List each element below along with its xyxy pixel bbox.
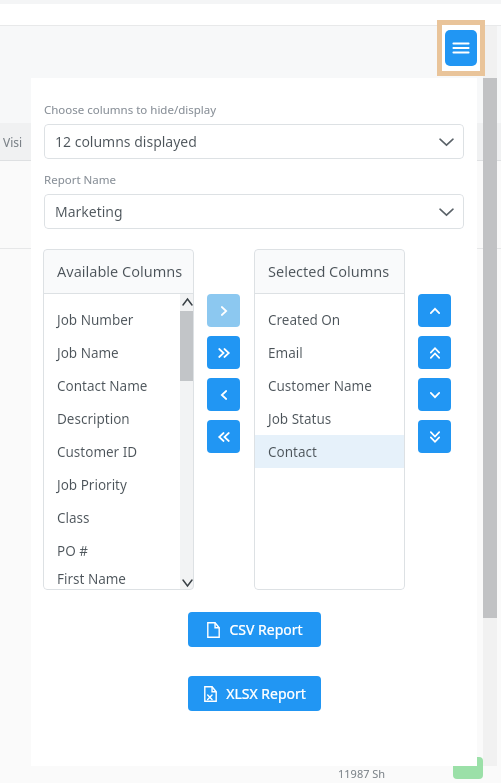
button[interactable]: Email bbox=[254, 336, 405, 369]
button[interactable]: Marketing bbox=[44, 194, 464, 229]
button[interactable]: First Name bbox=[43, 567, 194, 590]
button[interactable]: Job Priority bbox=[43, 468, 194, 501]
staticText: Description bbox=[57, 410, 130, 428]
button[interactable]: XLSX Report bbox=[188, 676, 321, 711]
staticText: Job Number bbox=[57, 311, 134, 329]
staticText: Customer ID bbox=[57, 443, 138, 461]
button[interactable]: Job Status bbox=[254, 402, 405, 435]
button[interactable]: Move to bottom bbox=[418, 420, 451, 453]
staticText: Email bbox=[268, 344, 303, 362]
staticText: Marketing bbox=[55, 202, 440, 221]
button[interactable]: Move right bbox=[207, 294, 240, 327]
staticText: XLSX Report bbox=[226, 684, 306, 703]
button[interactable]: Job Number bbox=[43, 303, 194, 336]
staticText: Available Columns bbox=[57, 261, 183, 281]
staticText: Job Priority bbox=[57, 476, 127, 494]
staticText: Contact bbox=[268, 443, 317, 461]
button[interactable]: Move up bbox=[418, 294, 451, 327]
button[interactable]: Move all right bbox=[207, 336, 240, 369]
button[interactable]: Job Name bbox=[43, 336, 194, 369]
staticText: 11987 Sh bbox=[338, 766, 386, 781]
button[interactable]: Contact Name bbox=[43, 369, 194, 402]
staticText: 12 columns displayed bbox=[55, 132, 440, 151]
button[interactable]: Scroll up bbox=[180, 294, 194, 309]
staticText: Report Name bbox=[44, 172, 116, 188]
staticText: First Name bbox=[57, 570, 126, 588]
button[interactable]: Move down bbox=[418, 378, 451, 411]
button[interactable]: Customer Name bbox=[254, 369, 405, 402]
button[interactable]: Contact bbox=[254, 435, 405, 468]
button[interactable]: PO # bbox=[43, 534, 194, 567]
staticText: Job Status bbox=[268, 410, 332, 428]
button[interactable]: Customer ID bbox=[43, 435, 194, 468]
staticText: Visi bbox=[3, 134, 23, 150]
staticText: Customer Name bbox=[268, 377, 372, 395]
staticText: Contact Name bbox=[57, 377, 148, 395]
button[interactable]: Description bbox=[43, 402, 194, 435]
button[interactable]: Scroll down bbox=[180, 575, 194, 590]
button[interactable]: Move all left bbox=[207, 420, 240, 453]
staticText: Created On bbox=[268, 311, 341, 329]
button[interactable]: 12 columns displayed bbox=[44, 124, 464, 159]
staticText: CSV Report bbox=[229, 620, 303, 639]
staticText: Job Name bbox=[57, 344, 119, 362]
staticText: Choose columns to hide/display bbox=[44, 102, 217, 118]
staticText: PO # bbox=[57, 542, 88, 560]
button[interactable]: Class bbox=[43, 501, 194, 534]
button[interactable]: Move left bbox=[207, 378, 240, 411]
staticText: Class bbox=[57, 509, 90, 527]
button[interactable]: Move to top bbox=[418, 336, 451, 369]
button[interactable]: Menu bbox=[445, 28, 477, 68]
button[interactable]: Created On bbox=[254, 303, 405, 336]
staticText: Selected Columns bbox=[268, 261, 390, 281]
button[interactable]: CSV Report bbox=[188, 612, 321, 647]
